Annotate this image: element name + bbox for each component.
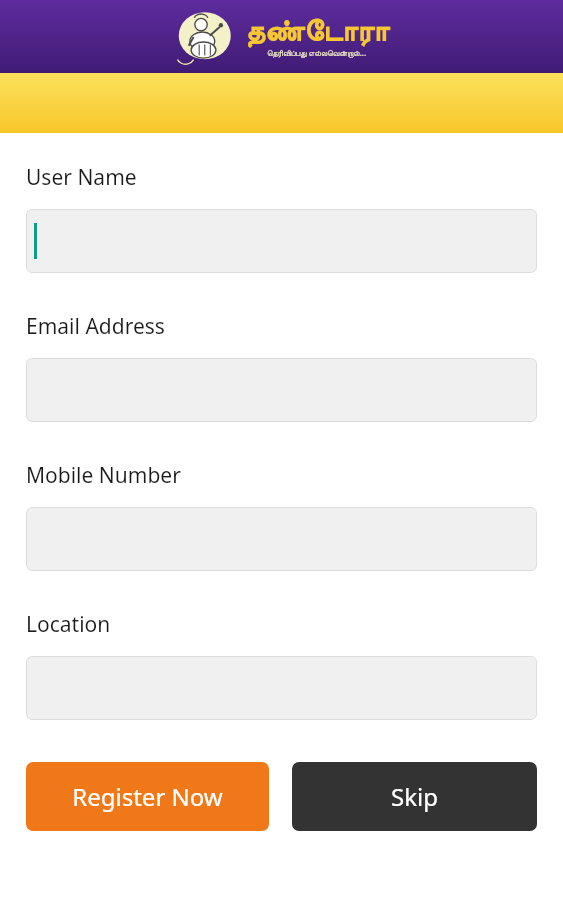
staticText: தெரிவிப்பது எல்லவென்றால்... bbox=[267, 47, 367, 58]
staticText: User Name bbox=[26, 163, 137, 192]
staticText: Skip bbox=[391, 780, 438, 813]
button[interactable] bbox=[26, 209, 537, 273]
button[interactable]: Register Now bbox=[26, 762, 269, 831]
staticText: தண்டோரா bbox=[245, 17, 389, 47]
staticText: Location bbox=[26, 610, 111, 639]
staticText: Email Address bbox=[26, 312, 165, 341]
button[interactable] bbox=[26, 507, 537, 571]
button[interactable] bbox=[26, 358, 537, 422]
button[interactable] bbox=[26, 656, 537, 720]
staticText: Register Now bbox=[72, 780, 223, 813]
staticText: Mobile Number bbox=[26, 461, 181, 490]
button[interactable]: Skip bbox=[292, 762, 537, 831]
other: Thandora logo bbox=[175, 6, 237, 68]
